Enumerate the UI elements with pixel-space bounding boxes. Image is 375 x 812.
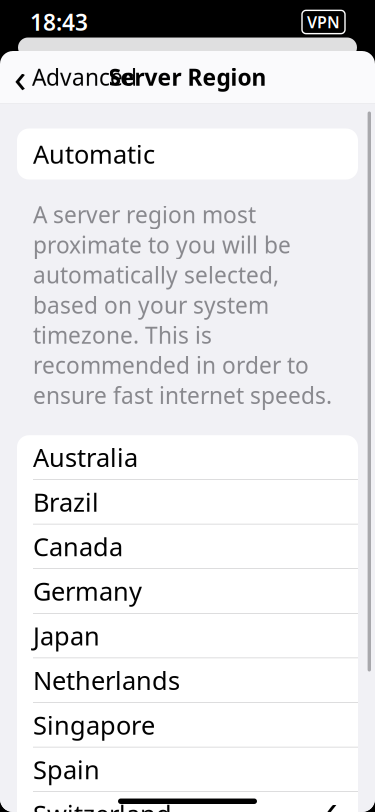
staticText: Singapore xyxy=(33,708,155,742)
button[interactable]: Canada xyxy=(17,524,358,569)
staticText: Spain xyxy=(33,753,100,786)
staticText: A server region most proximate to you wi… xyxy=(33,199,332,410)
staticText: Automatic xyxy=(33,137,155,171)
button[interactable]: Automatic xyxy=(17,128,358,179)
button[interactable]: Switzerland xyxy=(17,792,358,812)
staticText: Server Region xyxy=(108,62,266,92)
staticText: Australia xyxy=(33,440,138,474)
staticText: Netherlands xyxy=(33,663,180,697)
staticText: ✓ xyxy=(314,795,342,812)
button[interactable]: ‹ xyxy=(4,55,147,99)
staticText: Japan xyxy=(33,619,100,652)
staticText: Canada xyxy=(33,530,123,563)
button[interactable]: Germany xyxy=(17,569,358,614)
staticText: Germany xyxy=(33,574,142,608)
button[interactable]: Australia xyxy=(17,435,358,480)
staticText: VPN xyxy=(307,11,340,33)
staticText: Brazil xyxy=(33,485,99,519)
staticText: Advanced xyxy=(32,62,137,92)
staticText: Switzerland xyxy=(33,797,172,812)
staticText: ‹ xyxy=(14,50,26,103)
button[interactable]: Brazil xyxy=(17,480,358,524)
button[interactable]: Singapore xyxy=(17,703,358,747)
staticText: 18:43 xyxy=(30,7,88,37)
button[interactable]: Spain xyxy=(17,747,358,792)
button[interactable]: Netherlands xyxy=(17,658,358,703)
button[interactable]: Japan xyxy=(17,614,358,658)
